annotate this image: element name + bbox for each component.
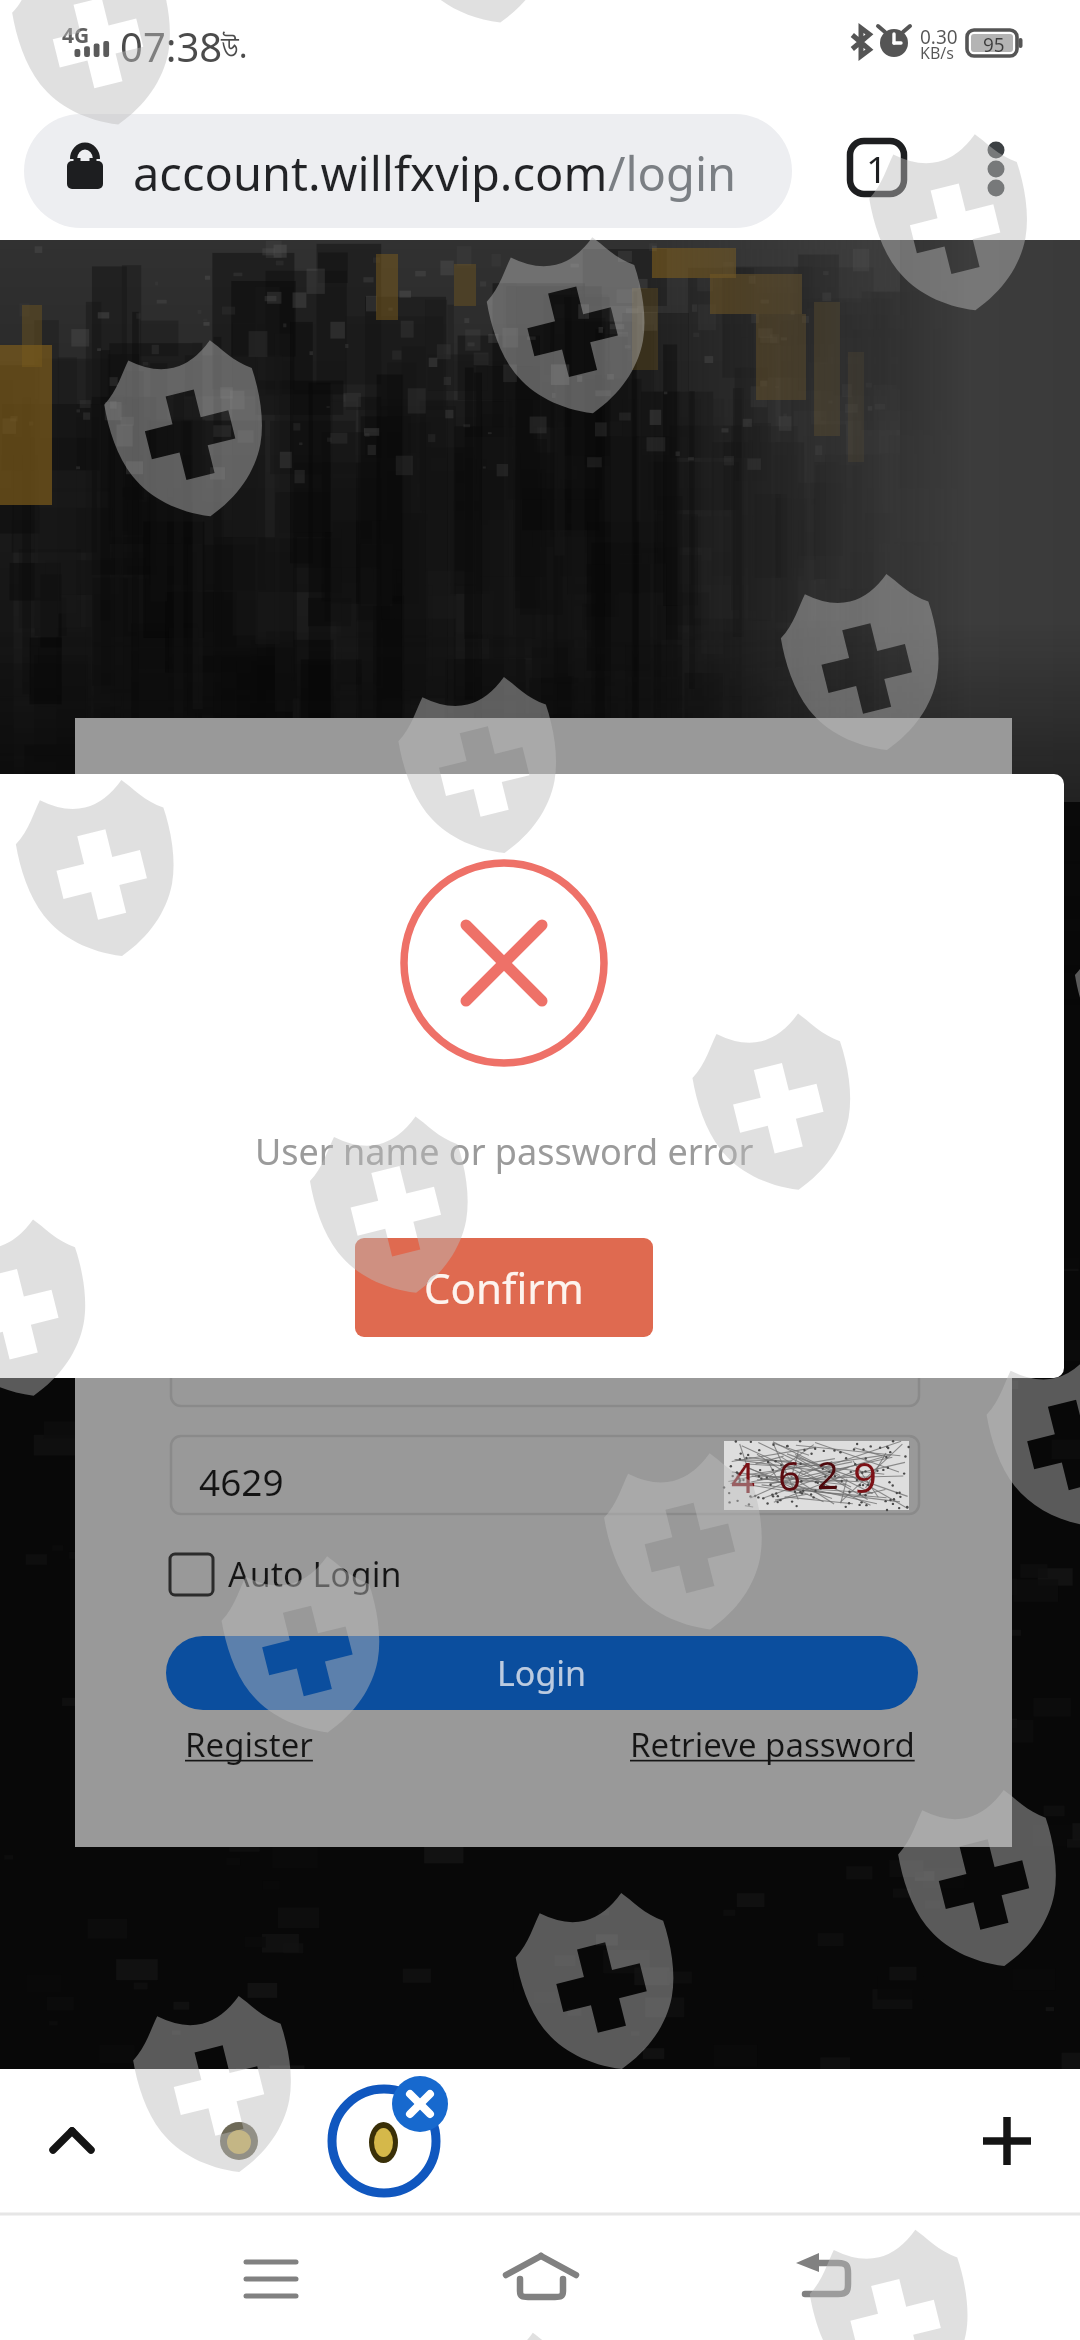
button[interactable]: Search or type web address [24,114,792,228]
staticText: Auto Login [228,1551,402,1597]
button[interactable]: New tab [955,2090,1059,2194]
staticText: Confirm [424,1259,584,1316]
staticText: 0.30 [920,24,958,50]
button[interactable]: Retrieve password [630,1722,915,1767]
staticText: User name or password error [255,1127,754,1176]
button[interactable]: Home [471,2222,611,2334]
staticText: 6 [778,1448,801,1502]
staticText: 4629 [199,1456,284,1506]
staticText: 9 [853,1448,878,1505]
staticText: 07:38 [120,19,223,73]
button[interactable]: Login [166,1636,918,1710]
staticText: /login [608,141,737,205]
staticText: Retrieve password [630,1722,915,1767]
staticText: 95 [983,32,1005,58]
staticText: account.willfxvip.com [133,141,608,205]
button[interactable]: Register [185,1722,313,1767]
button[interactable]: Tab [186,2089,292,2195]
staticText: 4 [731,1448,756,1505]
button[interactable]: Tabs [840,131,914,205]
button[interactable]: Recent apps [201,2222,341,2334]
button[interactable]: Back [761,2222,901,2334]
button[interactable]: Expand tab switcher [20,2090,124,2194]
staticText: 2 [817,1448,839,1500]
staticText: 1 [866,143,888,193]
button[interactable]: More options [960,130,1034,204]
staticText: Register [185,1722,313,1767]
staticText: KB/s [920,42,954,64]
button[interactable]: Confirm [355,1238,653,1337]
button[interactable]: Current tab [331,2089,437,2195]
staticText: উ. [221,23,248,68]
staticText: Login [497,1650,587,1696]
staticText: 4G [62,21,90,50]
